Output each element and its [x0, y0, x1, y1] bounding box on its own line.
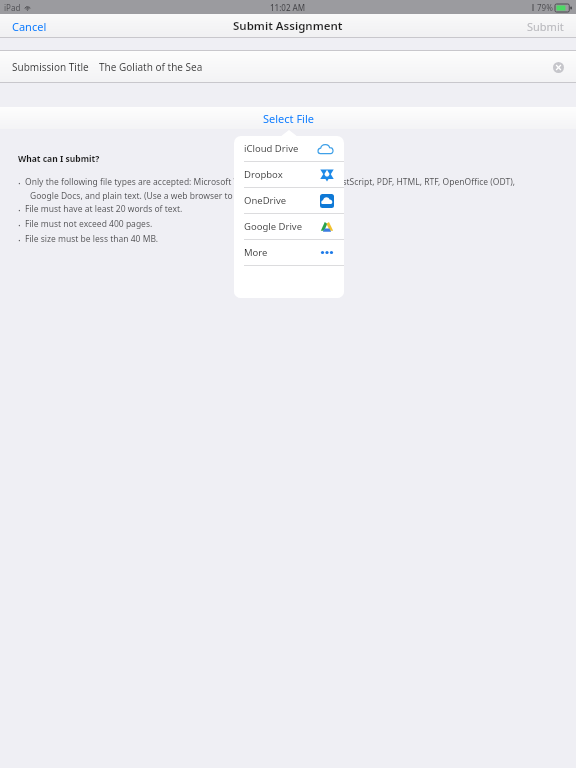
button[interactable]: Cancel — [0, 15, 59, 38]
button[interactable]: More — [234, 240, 344, 265]
staticText: Cancel — [12, 19, 47, 34]
staticText: · — [18, 233, 21, 247]
staticText: File must have at least 20 words of text… — [25, 203, 183, 215]
staticText: · — [18, 203, 21, 217]
staticText: 79% — [537, 2, 553, 13]
staticText: Only the following file types are accept… — [25, 176, 515, 188]
staticText: · — [18, 176, 21, 190]
staticText: OneDrive — [244, 194, 287, 207]
button[interactable]: Google Drive — [234, 214, 344, 239]
staticText: iPad — [4, 2, 21, 13]
staticText: · — [18, 218, 21, 232]
staticText: Submission Title — [12, 60, 89, 74]
button[interactable]: Select File — [247, 108, 330, 129]
staticText: Submit Assignment — [233, 18, 343, 34]
button[interactable]: Dropbox — [234, 162, 344, 187]
button[interactable]: Submission Title — [0, 50, 576, 83]
button[interactable]: OneDrive — [234, 188, 344, 213]
staticText: File must not exceed 400 pages. — [25, 218, 153, 230]
button[interactable]: iCloud Drive — [234, 136, 344, 161]
staticText: Dropbox — [244, 168, 283, 181]
staticText: File size must be less than 40 MB. — [25, 233, 159, 245]
staticText: 11:02 AM — [270, 2, 306, 13]
staticText: Select File — [263, 111, 314, 126]
staticText: What can I submit? — [18, 153, 100, 165]
button[interactable]: Clear text — [548, 57, 568, 77]
staticText: Google Docs, and plain text. (Use a web … — [30, 190, 338, 202]
staticText: More — [244, 246, 268, 259]
button[interactable]: Submit — [515, 15, 576, 38]
staticText: The Goliath of the Sea — [99, 60, 203, 74]
staticText: iCloud Drive — [244, 142, 299, 155]
staticText: Submit — [527, 19, 564, 34]
staticText: Google Drive — [244, 220, 303, 233]
